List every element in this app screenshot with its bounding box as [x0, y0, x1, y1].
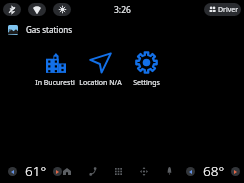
button[interactable]: Brightness: [53, 3, 71, 16]
staticText: 3:26: [114, 4, 131, 16]
staticText: 61°: [25, 162, 47, 180]
button[interactable]: Apps: [109, 162, 127, 180]
staticText: Settings: [133, 78, 160, 88]
button[interactable]: Wi-Fi: [28, 3, 46, 16]
button[interactable]: Gas stations: [0, 22, 244, 37]
staticText: Location N/A: [79, 78, 122, 88]
button[interactable]: 61°: [8, 161, 62, 181]
staticText: 68°: [203, 162, 225, 180]
button[interactable]: Navigation: [135, 162, 153, 180]
button[interactable]: Home: [58, 162, 76, 180]
staticText: Gas stations: [26, 24, 72, 35]
button[interactable]: Settings: [124, 51, 168, 88]
button[interactable]: Location N/A: [78, 51, 122, 88]
button[interactable]: 68°: [186, 161, 240, 181]
button[interactable]: Bluetooth: [3, 3, 21, 16]
button[interactable]: Phone: [84, 162, 102, 180]
button[interactable]: Driver: [204, 3, 241, 16]
staticText: Driver: [218, 5, 239, 15]
button[interactable]: Notifications: [160, 162, 178, 180]
staticText: In Bucuresti: [35, 78, 75, 88]
button[interactable]: In Bucuresti: [33, 51, 77, 88]
